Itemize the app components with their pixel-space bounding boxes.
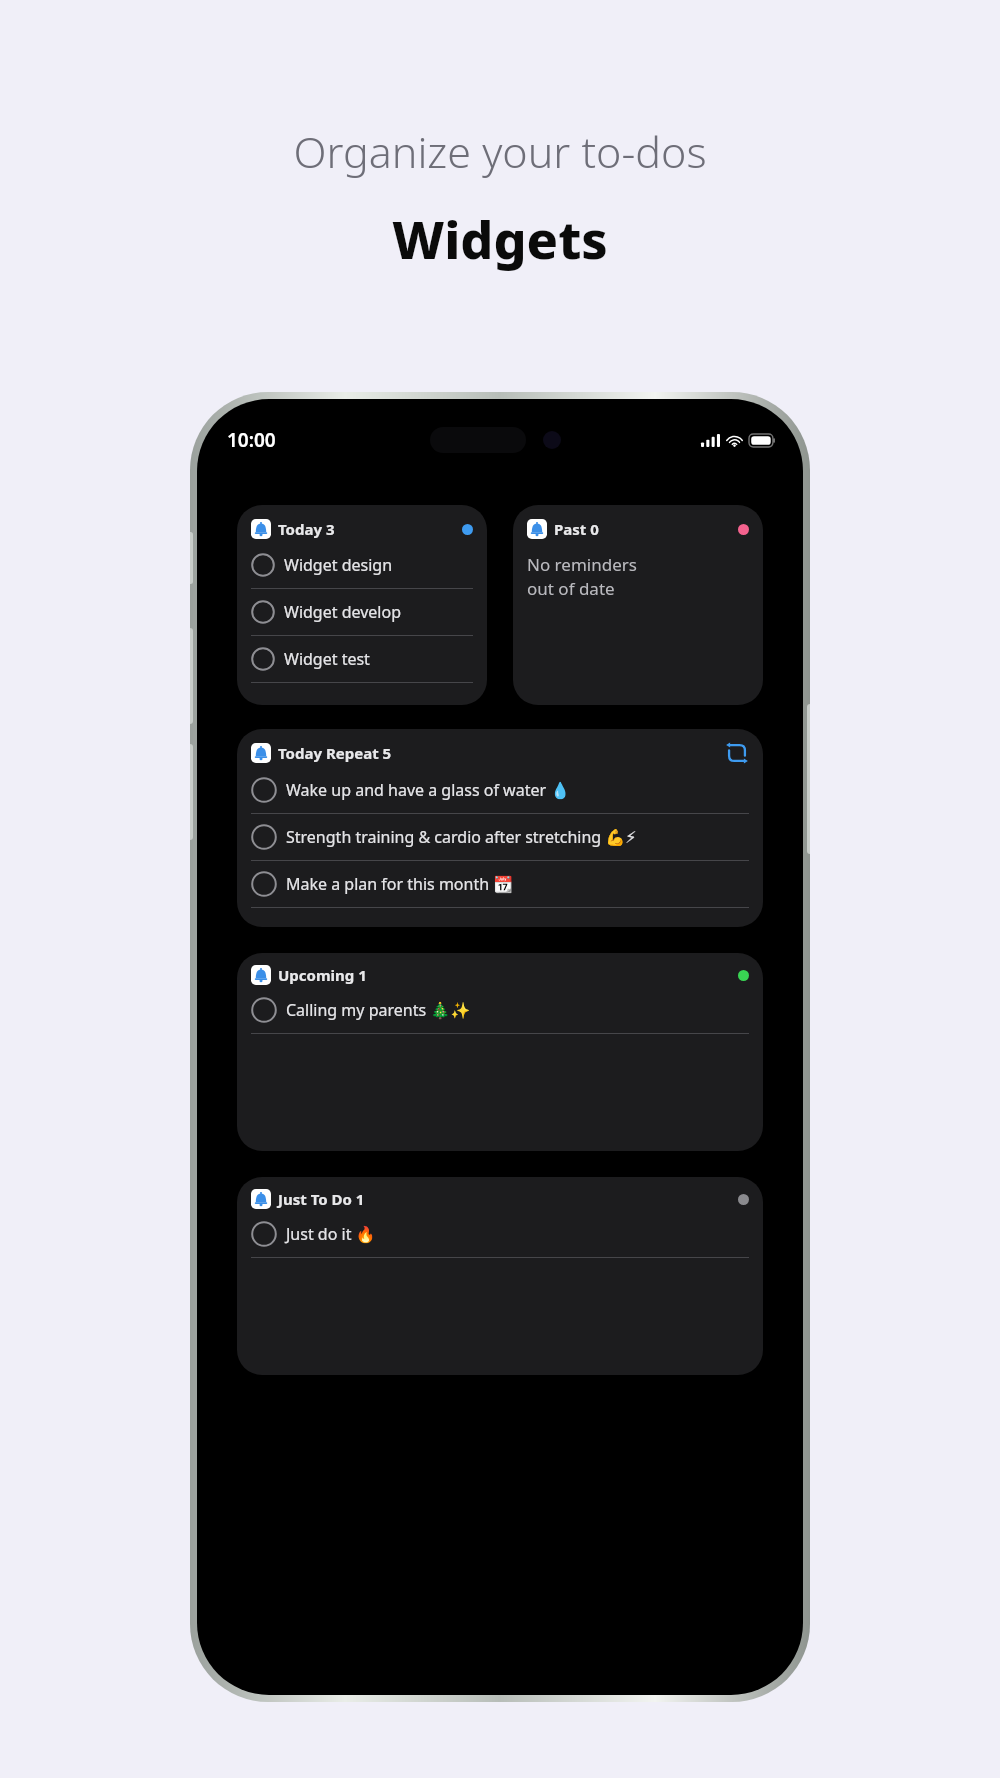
staticText: Just do it 🔥 — [286, 1223, 376, 1245]
staticText: Organize your to-dos — [293, 122, 707, 181]
staticText: No reminders out of date — [527, 553, 637, 600]
button[interactable]: Today 3 — [237, 505, 487, 705]
button[interactable]: Just do it 🔥 — [251, 1211, 749, 1258]
button[interactable]: Widget develop — [251, 589, 473, 636]
button[interactable]: Past 0 — [513, 505, 763, 705]
staticText: Strength training & cardio after stretch… — [286, 826, 637, 848]
staticText: Widget test — [284, 648, 370, 670]
button[interactable]: Strength training & cardio after stretch… — [251, 814, 749, 861]
staticText: Make a plan for this month 📆 — [286, 873, 514, 895]
staticText: Widget design — [284, 554, 393, 576]
staticText: Widget develop — [284, 601, 401, 623]
staticText: Today 3 — [278, 519, 335, 539]
other: Repeat — [725, 741, 749, 765]
staticText: Just To Do 1 — [278, 1189, 365, 1209]
staticText: Calling my parents 🎄✨ — [286, 999, 471, 1021]
button[interactable]: Calling my parents 🎄✨ — [251, 987, 749, 1034]
button[interactable]: Upcoming 1 — [237, 953, 763, 1151]
button[interactable]: Wake up and have a glass of water 💧 — [251, 767, 749, 814]
staticText: Wake up and have a glass of water 💧 — [286, 779, 571, 801]
button[interactable]: Widget test — [251, 636, 473, 683]
button[interactable]: Today Repeat 5 — [237, 729, 763, 927]
staticText: Upcoming 1 — [278, 965, 367, 985]
button[interactable]: Widget design — [251, 542, 473, 589]
staticText: 10:00 — [227, 427, 276, 453]
button[interactable]: Make a plan for this month 📆 — [251, 861, 749, 908]
button[interactable]: Just To Do 1 — [237, 1177, 763, 1375]
staticText: Widgets — [392, 203, 608, 274]
staticText: Past 0 — [554, 519, 599, 539]
staticText: Today Repeat 5 — [278, 743, 392, 763]
